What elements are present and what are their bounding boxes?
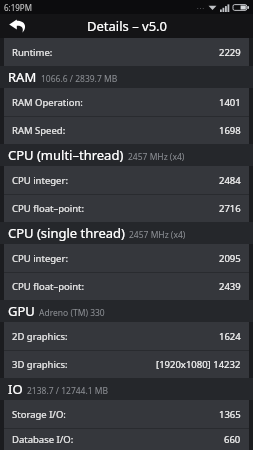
staticText: Database I/O: (12, 433, 74, 446)
staticText: 6:19PM (4, 2, 32, 13)
staticText: 660 (224, 433, 241, 446)
staticText: 1698 (219, 124, 241, 137)
staticText: CPU float–point: (12, 280, 85, 293)
button[interactable]: Runtime: (4, 38, 249, 66)
staticText: CPU (single thread) (8, 224, 125, 242)
staticText: RAM Operation: (12, 96, 83, 109)
staticText: 1365 (219, 408, 241, 421)
staticText: RAM Speed: (12, 124, 66, 137)
button[interactable]: RAM Operation: (4, 88, 249, 116)
staticText: CPU integer: (12, 252, 68, 265)
staticText: IO (8, 380, 23, 398)
staticText: 2D graphics: (12, 330, 68, 343)
staticText: Adreno (TM) 330 (39, 307, 105, 319)
other: Back (8, 16, 28, 36)
button[interactable]: Storage I/O: (4, 400, 249, 428)
button[interactable]: CPU float–point: (4, 195, 249, 222)
staticText: CPU float–point: (12, 202, 85, 215)
staticText: [1920x1080] 14232 (156, 358, 241, 371)
staticText: 2457 MHz (x4) (128, 151, 185, 163)
staticText: Details – v5.0 (87, 17, 167, 35)
staticText: 2439 (219, 280, 241, 293)
staticText: 1401 (219, 96, 241, 109)
button[interactable]: RAM Speed: (4, 117, 249, 144)
staticText: RAM (8, 68, 37, 86)
staticText: 2138.7 / 12744.1 MB (27, 385, 109, 397)
staticText: Storage I/O: (12, 408, 66, 421)
button[interactable]: CPU float–point: (4, 273, 249, 300)
staticText: 3D graphics: (12, 358, 68, 371)
button[interactable]: CPU integer: (4, 244, 249, 272)
staticText: GPU (8, 302, 35, 320)
staticText: 2716 (219, 202, 241, 215)
staticText: 2229 (219, 46, 241, 59)
staticText: 1066.6 / 2839.7 MB (41, 73, 118, 85)
staticText: 2484 (219, 174, 241, 187)
staticText: 2457 MHz (x4) (129, 229, 186, 241)
button[interactable]: CPU integer: (4, 166, 249, 194)
button[interactable]: 2D graphics: (4, 322, 249, 350)
staticText: 1624 (219, 330, 241, 343)
staticText: 2095 (219, 252, 241, 265)
button[interactable]: 3D graphics: (4, 351, 249, 378)
button[interactable]: Database I/O: (4, 429, 249, 450)
button[interactable]: Back (7, 15, 29, 37)
staticText: CPU (multi–thread) (8, 146, 124, 164)
staticText: CPU integer: (12, 174, 68, 187)
staticText: Runtime: (12, 46, 53, 59)
